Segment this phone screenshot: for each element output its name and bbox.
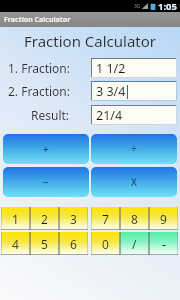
- staticText: 1:05: [158, 0, 177, 12]
- staticText: +: [43, 142, 49, 156]
- staticText: 6: [70, 236, 77, 252]
- staticText: 3: [70, 211, 77, 227]
- staticText: /: [132, 236, 137, 252]
- staticText: 0: [102, 236, 109, 252]
- staticText: X: [131, 175, 137, 189]
- button[interactable]: ÷: [91, 134, 177, 164]
- button[interactable]: -: [149, 232, 178, 255]
- button[interactable]: 2: [30, 207, 59, 230]
- staticText: 3 3/4: [96, 83, 126, 100]
- staticText: 1 1/2: [96, 60, 126, 77]
- button[interactable]: 8: [120, 207, 149, 230]
- staticText: 9: [160, 211, 167, 227]
- staticText: Result:: [31, 107, 70, 123]
- button[interactable]: 21/4: [91, 105, 177, 125]
- staticText: −: [43, 175, 49, 189]
- staticText: 1: [12, 211, 19, 227]
- staticText: 21/4: [96, 107, 123, 124]
- button[interactable]: /: [120, 232, 149, 255]
- button[interactable]: 5: [30, 232, 59, 255]
- staticText: -: [162, 236, 166, 252]
- staticText: 2: [41, 211, 48, 227]
- staticText: Fraction Calculator: [24, 31, 157, 51]
- button[interactable]: 3: [59, 207, 88, 230]
- button[interactable]: 4: [1, 232, 30, 255]
- staticText: 2. Fraction:: [8, 83, 70, 99]
- button[interactable]: 6: [59, 232, 88, 255]
- staticText: 3G: [134, 3, 141, 10]
- button[interactable]: −: [3, 167, 89, 197]
- staticText: 8: [131, 211, 138, 227]
- staticText: 4: [12, 236, 19, 252]
- button[interactable]: 9: [149, 207, 178, 230]
- staticText: 1. Fraction:: [8, 60, 70, 76]
- staticText: ÷: [131, 142, 137, 156]
- button[interactable]: X: [91, 167, 177, 197]
- button[interactable]: 7: [91, 207, 120, 230]
- staticText: 7: [102, 211, 109, 227]
- staticText: 5: [41, 236, 48, 252]
- staticText: Fraction Calculator: [4, 15, 71, 25]
- button[interactable]: 1: [1, 207, 30, 230]
- button[interactable]: +: [3, 134, 89, 164]
- button[interactable]: 1 1/2: [91, 58, 177, 78]
- button[interactable]: 3 3/4: [91, 81, 177, 101]
- button[interactable]: 0: [91, 232, 120, 255]
